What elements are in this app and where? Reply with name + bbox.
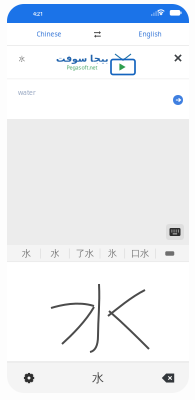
button[interactable]: 了水 (70, 245, 100, 262)
staticText: 水 (18, 55, 25, 63)
button[interactable]: Settings (16, 370, 42, 386)
button[interactable]: 水 (12, 245, 40, 262)
staticText: 4:21 (33, 10, 43, 17)
button[interactable]: More candidates (156, 245, 184, 262)
button[interactable]: Translate (173, 95, 183, 105)
staticText: 氷 (108, 248, 117, 259)
button[interactable]: 水 (41, 245, 69, 262)
staticText: 口水 (131, 248, 149, 259)
button[interactable]: Chinese (12, 23, 86, 45)
staticText: English (138, 30, 161, 38)
staticText: 水 (50, 248, 59, 259)
button[interactable]: Switch to keyboard (166, 224, 184, 240)
button[interactable]: 口水 (125, 245, 155, 262)
staticText: water (18, 88, 36, 97)
button[interactable]: English (113, 23, 187, 45)
staticText: 水 (92, 371, 104, 385)
button[interactable]: 水 (85, 369, 111, 387)
staticText: 了水 (76, 248, 94, 259)
button[interactable]: Swap languages (94, 30, 101, 39)
button[interactable]: Delete (155, 370, 181, 386)
staticText: Chinese (36, 30, 61, 38)
staticText: Pegasoft.net (66, 64, 97, 71)
button[interactable]: 氷 (100, 245, 124, 262)
button[interactable]: Clear (172, 52, 184, 64)
staticText: بيجا سوفت (55, 53, 108, 64)
staticText: 水 (22, 248, 31, 259)
